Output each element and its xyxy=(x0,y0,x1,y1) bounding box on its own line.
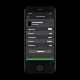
button[interactable] xyxy=(26,43,54,47)
button[interactable] xyxy=(26,27,54,31)
button[interactable]: Status bar xyxy=(26,58,54,60)
button[interactable] xyxy=(26,31,54,35)
button[interactable] xyxy=(26,35,54,39)
button[interactable]: Thumbnail xyxy=(28,21,31,26)
button[interactable]: Back xyxy=(27,16,30,18)
button[interactable]: Home xyxy=(37,65,43,71)
button[interactable] xyxy=(26,39,54,43)
button[interactable] xyxy=(29,50,51,53)
